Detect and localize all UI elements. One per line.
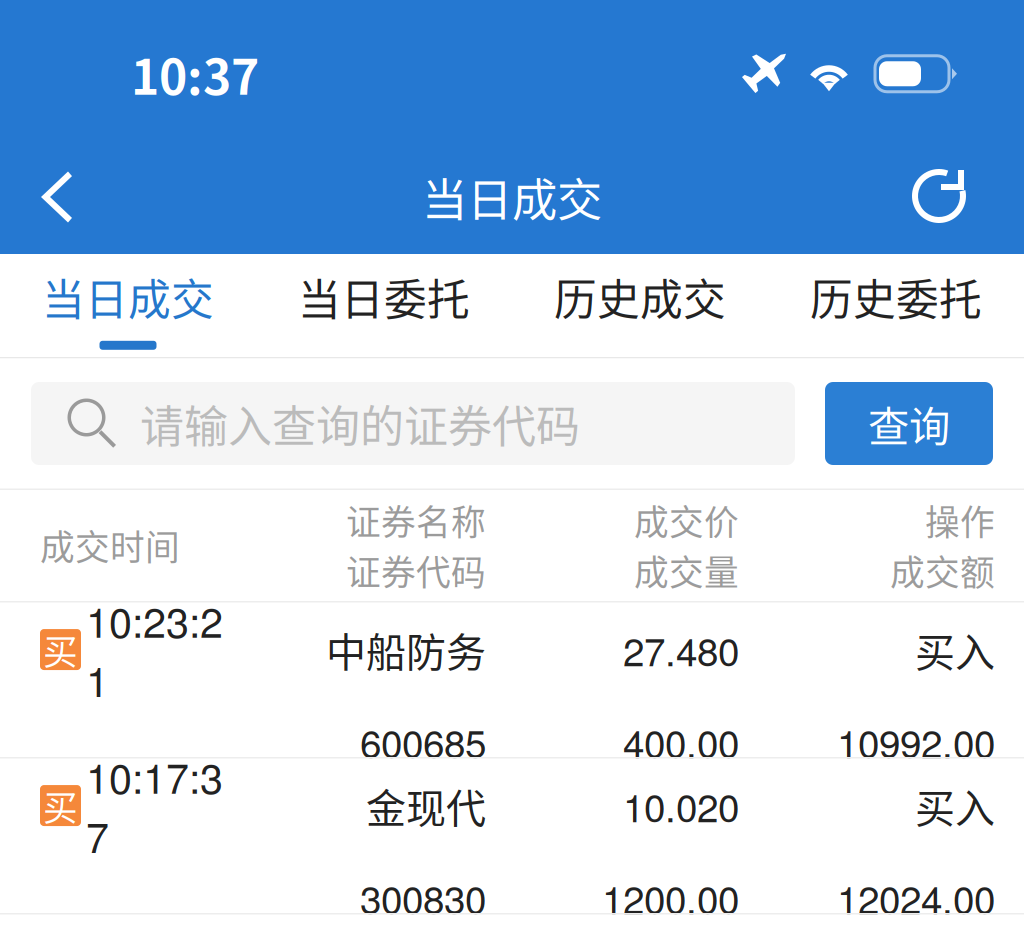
staticText: 历史成交 <box>554 266 726 328</box>
staticText: 中船防务 <box>326 621 486 678</box>
staticText: 当日成交 <box>422 164 602 230</box>
staticText: 买入 <box>915 777 995 834</box>
button[interactable]: 历史成交 <box>512 254 768 357</box>
button[interactable]: Back <box>16 122 96 263</box>
staticText: 成交时间 <box>40 520 180 570</box>
staticText: 600685 <box>360 714 486 769</box>
staticText: 300830 <box>360 870 486 925</box>
staticText: 12024.00 <box>837 870 995 925</box>
staticText: 10:17:37 <box>86 746 223 865</box>
staticText: 10992.00 <box>837 714 995 769</box>
staticText: 买入 <box>915 621 995 678</box>
staticText: 10.020 <box>623 778 739 833</box>
button[interactable]: 当日成交 <box>0 254 256 357</box>
staticText: 金现代 <box>366 777 486 834</box>
staticText: 操作 <box>925 495 995 545</box>
staticText: 10:23:21 <box>86 590 223 709</box>
button[interactable]: 查询 <box>825 382 993 465</box>
staticText: 历史委托 <box>810 266 982 328</box>
staticText: 1200.00 <box>602 870 739 925</box>
staticText: 买 <box>43 624 78 675</box>
staticText: 证券代码 <box>346 545 486 595</box>
staticText: 400.00 <box>623 714 739 769</box>
staticText: 当日委托 <box>298 266 470 328</box>
staticText: 当日成交 <box>42 266 214 328</box>
staticText: 查询 <box>868 394 950 453</box>
staticText: 请输入查询的证券代码 <box>140 392 580 455</box>
staticText: 成交额 <box>890 545 995 595</box>
staticText: 27.480 <box>623 622 739 677</box>
staticText: 10:37 <box>131 39 259 108</box>
staticText: 成交价 <box>634 495 739 545</box>
staticText: 买 <box>43 780 78 831</box>
button[interactable]: Refresh <box>896 122 984 263</box>
button[interactable]: 当日委托 <box>256 254 512 357</box>
staticText: 证券名称 <box>346 495 486 545</box>
staticText: 成交量 <box>634 545 739 595</box>
button[interactable]: 历史委托 <box>768 254 1024 357</box>
